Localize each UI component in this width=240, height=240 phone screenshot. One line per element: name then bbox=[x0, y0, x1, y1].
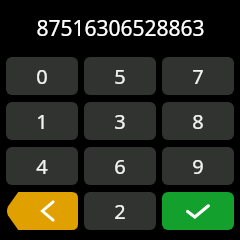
staticText: 3 bbox=[114, 108, 126, 135]
button[interactable]: 1 bbox=[6, 102, 78, 140]
staticText: 87516306528863 bbox=[36, 14, 205, 43]
button[interactable]: 5 bbox=[84, 57, 156, 95]
staticText: 4 bbox=[36, 153, 48, 180]
button[interactable]: Confirm bbox=[162, 192, 234, 230]
staticText: 1 bbox=[36, 108, 48, 135]
staticText: 6 bbox=[114, 153, 126, 180]
button[interactable]: 3 bbox=[84, 102, 156, 140]
staticText: 9 bbox=[192, 153, 204, 180]
button[interactable]: 2 bbox=[84, 192, 156, 230]
button[interactable]: Backspace bbox=[6, 192, 78, 230]
staticText: 8 bbox=[192, 108, 204, 135]
button[interactable]: 0 bbox=[6, 57, 78, 95]
button[interactable]: 8 bbox=[162, 102, 234, 140]
staticText: 2 bbox=[114, 198, 126, 225]
staticText: 5 bbox=[114, 63, 126, 90]
button[interactable]: 6 bbox=[84, 147, 156, 185]
button[interactable]: 9 bbox=[162, 147, 234, 185]
button[interactable]: 4 bbox=[6, 147, 78, 185]
staticText: 0 bbox=[36, 63, 48, 90]
staticText: 7 bbox=[192, 63, 204, 90]
button[interactable]: 7 bbox=[162, 57, 234, 95]
